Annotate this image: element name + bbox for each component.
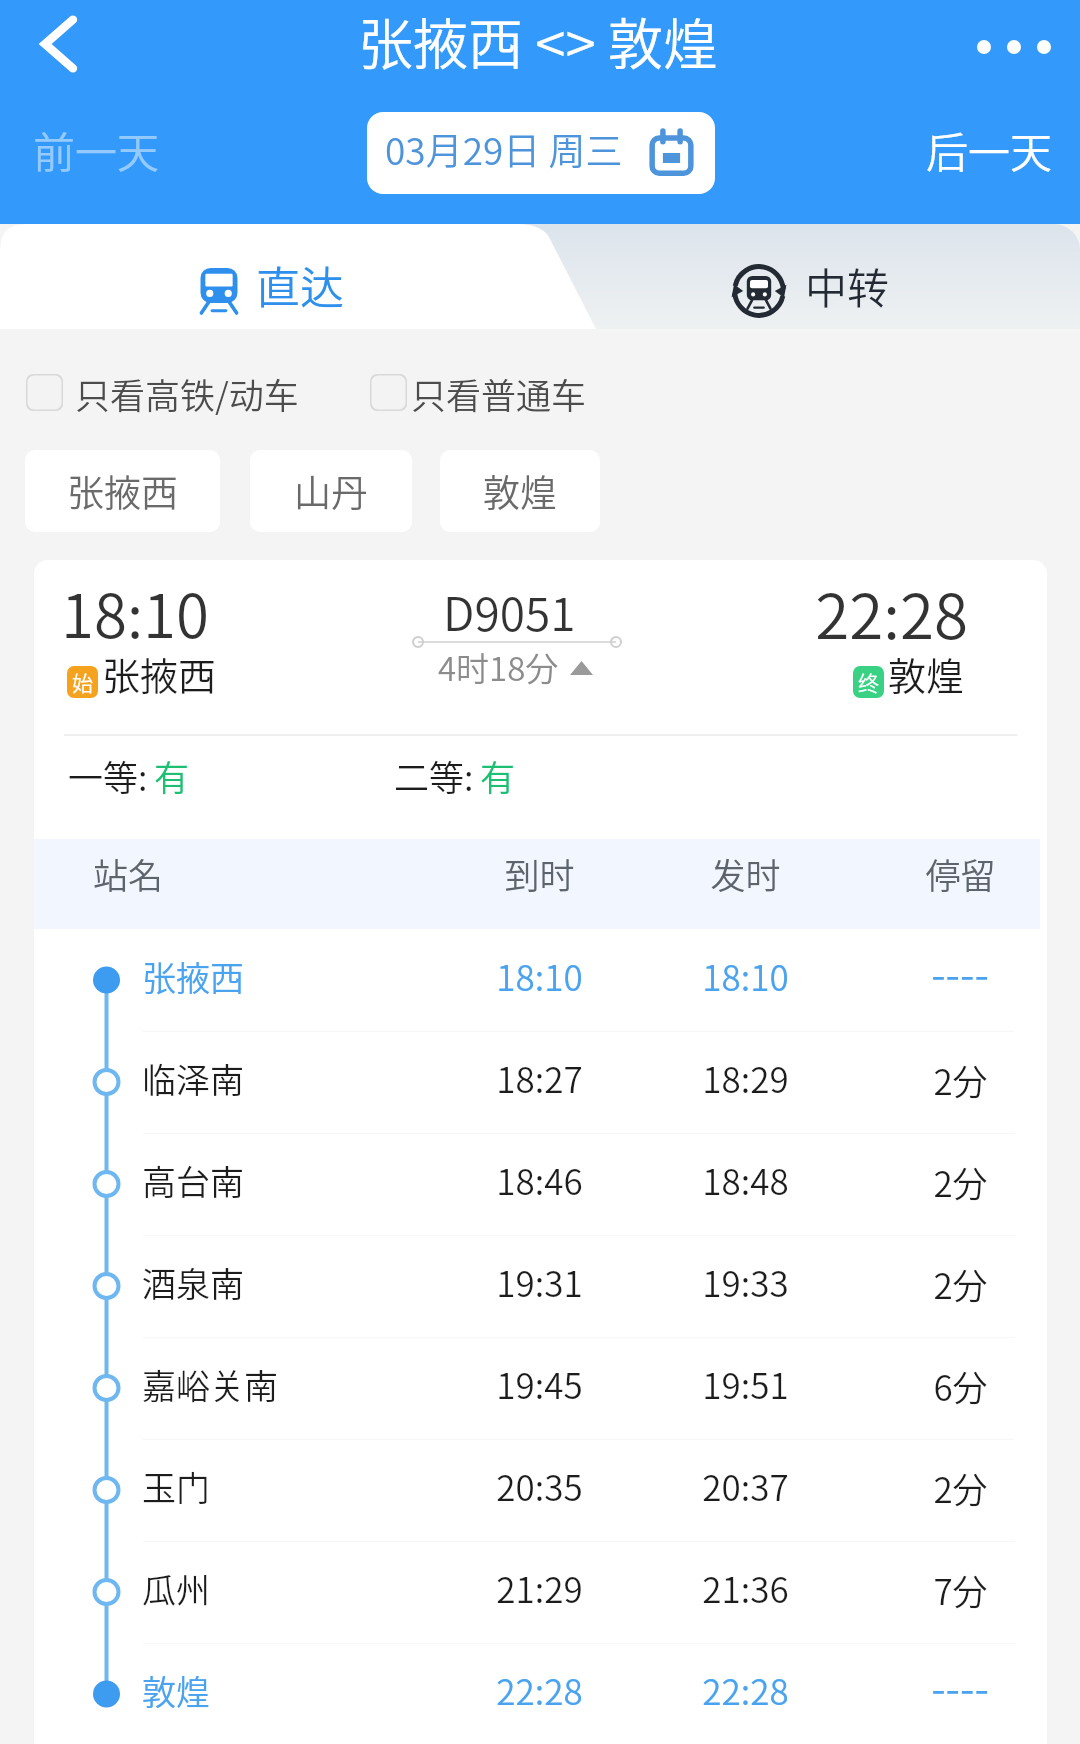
staticText: 21:29 xyxy=(496,1562,583,1613)
staticText: 只看高铁/动车 xyxy=(75,368,299,419)
staticText: 19:45 xyxy=(496,1358,583,1409)
staticText: 玉门 xyxy=(142,1462,210,1511)
button[interactable]: 只看高铁/动车 xyxy=(26,374,287,425)
button[interactable]: 直达 xyxy=(0,219,596,329)
button[interactable]: 嘉峪关南 xyxy=(34,1337,1047,1439)
staticText: 高台南 xyxy=(142,1156,244,1205)
staticText: D9051 xyxy=(443,578,576,645)
staticText: 22:28 xyxy=(496,1664,583,1715)
staticText: 18:10 xyxy=(496,950,583,1001)
staticText: 20:37 xyxy=(702,1460,789,1511)
staticText: 22:28 xyxy=(700,567,968,657)
staticText: 4时18分 xyxy=(438,643,559,691)
staticText: 酒泉南 xyxy=(142,1258,244,1307)
staticText: 18:27 xyxy=(496,1052,583,1103)
staticText: 一等: xyxy=(68,750,156,801)
staticText: 山丹 xyxy=(294,464,368,518)
staticText: 22:28 xyxy=(702,1664,789,1715)
staticText: 直达 xyxy=(256,253,344,317)
staticText: 18:48 xyxy=(702,1154,789,1205)
button[interactable]: 山丹 xyxy=(250,450,412,532)
staticText: 18:10 xyxy=(61,568,209,655)
button[interactable]: 临泽南 xyxy=(34,1031,1047,1133)
staticText: 有 xyxy=(480,750,516,801)
staticText: 张掖西 xyxy=(67,464,178,518)
button[interactable]: 敦煌 xyxy=(440,450,600,532)
staticText: 敦煌 xyxy=(888,646,965,701)
staticText: 中转 xyxy=(805,255,890,316)
staticText: 18:46 xyxy=(496,1154,583,1205)
staticText: ---- xyxy=(931,1655,989,1716)
staticText: 19:51 xyxy=(702,1358,789,1409)
staticText: 发时 xyxy=(710,848,781,899)
staticText: 嘉峪关南 xyxy=(142,1360,278,1409)
button[interactable]: 03月29日 周三 xyxy=(367,112,715,194)
button[interactable]: 敦煌 xyxy=(34,1643,1047,1744)
staticText: 站名 xyxy=(93,848,164,899)
staticText: 张掖西 xyxy=(142,952,244,1001)
button[interactable]: 瓜州 xyxy=(34,1541,1047,1643)
staticText: 敦煌 xyxy=(483,464,557,518)
staticText: 2分 xyxy=(933,1054,988,1105)
staticText: 18:29 xyxy=(702,1052,789,1103)
button[interactable]: 后一天 xyxy=(720,108,1080,198)
staticText: 到时 xyxy=(504,848,575,899)
staticText: 敦煌 xyxy=(142,1666,210,1715)
button[interactable]: 前一天 xyxy=(0,108,360,198)
button[interactable]: 张掖西 xyxy=(25,450,220,532)
button[interactable]: 酒泉南 xyxy=(34,1235,1047,1337)
button[interactable]: 只看普通车 xyxy=(370,374,583,425)
staticText: 7分 xyxy=(933,1564,988,1615)
staticText: 张掖西 <> 敦煌 xyxy=(358,0,718,80)
staticText: 20:35 xyxy=(496,1460,583,1511)
staticText: 张掖西 xyxy=(102,646,217,701)
staticText: 2分 xyxy=(933,1156,988,1207)
staticText: 03月29日 周三 xyxy=(385,122,623,176)
staticText: 后一天 xyxy=(926,119,1053,180)
staticText: 18:10 xyxy=(702,950,789,1001)
button[interactable]: 高台南 xyxy=(34,1133,1047,1235)
staticText: 19:31 xyxy=(496,1256,583,1307)
button[interactable]: Back xyxy=(3,0,115,100)
staticText: 21:36 xyxy=(702,1562,789,1613)
staticText: 瓜州 xyxy=(142,1564,210,1613)
button[interactable]: 张掖西 xyxy=(34,929,1047,1031)
button[interactable]: 玉门 xyxy=(34,1439,1047,1541)
staticText: 2分 xyxy=(933,1462,988,1513)
staticText: 19:33 xyxy=(702,1256,789,1307)
staticText: ---- xyxy=(931,941,989,1002)
staticText: 前一天 xyxy=(33,119,160,180)
staticText: 2分 xyxy=(933,1258,988,1309)
staticText: 临泽南 xyxy=(142,1054,244,1103)
staticText: 始 xyxy=(72,667,93,697)
button[interactable]: 中转 xyxy=(596,219,1080,329)
staticText: 有 xyxy=(154,750,190,801)
staticText: 停留 xyxy=(925,848,996,899)
button[interactable]: More options xyxy=(960,10,1068,84)
staticText: 6分 xyxy=(933,1360,988,1411)
staticText: 终 xyxy=(858,667,879,697)
staticText: 二等: xyxy=(394,750,482,801)
staticText: 只看普通车 xyxy=(411,368,587,419)
